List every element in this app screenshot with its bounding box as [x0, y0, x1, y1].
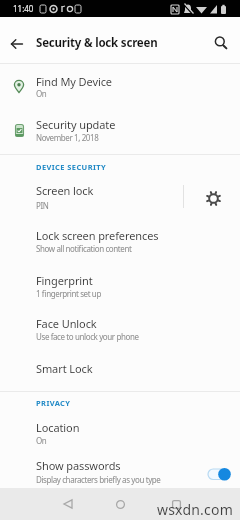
button[interactable]	[196, 181, 230, 215]
button[interactable]: Fingerprint	[0, 265, 240, 310]
staticText: On	[36, 435, 47, 446]
staticText: Display characters briefly as you type	[36, 474, 161, 485]
staticText: Location	[36, 420, 80, 435]
button[interactable]: Security update	[0, 108, 240, 151]
button[interactable]: Face Unlock	[0, 308, 240, 353]
staticText: PRIVACY	[36, 398, 71, 408]
button[interactable]	[0, 25, 36, 63]
staticText: Show passwords	[36, 458, 121, 473]
button[interactable]	[53, 489, 83, 519]
button[interactable]: Find My Device	[0, 65, 240, 107]
staticText: wsxdn.com	[157, 500, 233, 519]
staticText: Security & lock screen	[36, 35, 158, 51]
staticText: Use face to unlock your phone	[36, 331, 139, 342]
staticText: Show all notification content	[36, 243, 132, 254]
staticText: Lock screen preferences	[36, 228, 159, 243]
staticText: Find My Device	[36, 74, 112, 89]
button[interactable]	[105, 489, 135, 519]
button[interactable]: Show passwords	[0, 455, 240, 488]
button[interactable]: Screen lock	[0, 175, 240, 220]
button[interactable]	[161, 489, 191, 519]
staticText: Fingerprint	[36, 273, 93, 288]
staticText: Face Unlock	[36, 316, 97, 331]
staticText: Screen lock	[36, 183, 94, 198]
button[interactable]: Location	[0, 412, 240, 454]
button[interactable]: Smart Lock	[0, 353, 240, 391]
staticText: November 1, 2018	[36, 132, 99, 143]
button[interactable]	[202, 24, 240, 62]
staticText: DEVICE SECURITY	[36, 162, 107, 172]
staticText: 11:40	[13, 3, 34, 14]
staticText: PIN	[36, 200, 49, 211]
button[interactable]: Lock screen preferences	[0, 220, 240, 265]
staticText: On	[36, 88, 47, 99]
staticText: 1 fingerprint set up	[36, 288, 101, 299]
staticText: Smart Lock	[36, 361, 93, 376]
staticText: Security update	[36, 117, 116, 132]
